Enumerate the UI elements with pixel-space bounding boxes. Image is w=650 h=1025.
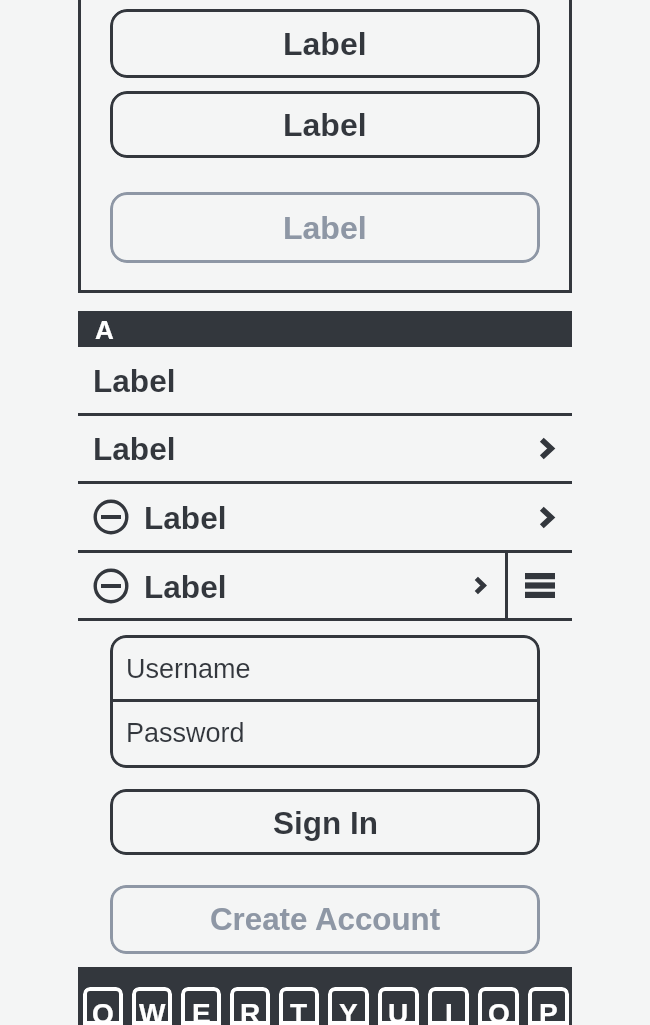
button[interactable]: Y [328, 987, 369, 1025]
button[interactable]: Label [78, 553, 505, 618]
staticText: A [95, 315, 114, 344]
staticText: Password [126, 718, 245, 748]
staticText: Q [92, 998, 114, 1025]
button[interactable]: P [528, 987, 569, 1025]
button[interactable]: E [181, 987, 221, 1025]
button[interactable]: R [230, 987, 270, 1025]
staticText: U [388, 998, 409, 1025]
staticText: Y [339, 998, 358, 1025]
staticText: W [139, 998, 166, 1025]
button[interactable]: Label [110, 91, 540, 158]
button[interactable]: Label [78, 416, 572, 481]
staticText: Label [283, 26, 367, 62]
button[interactable]: Sign In [110, 789, 540, 855]
button[interactable]: Label [78, 347, 572, 413]
staticText: Create Account [210, 902, 441, 937]
button[interactable]: Q [83, 987, 123, 1025]
staticText: O [488, 998, 510, 1025]
staticText: Sign In [273, 805, 378, 840]
button[interactable]: W [132, 987, 172, 1025]
staticText: Label [144, 569, 227, 604]
button[interactable]: A [78, 311, 572, 347]
staticText: I [445, 998, 453, 1025]
button[interactable]: O [478, 987, 519, 1025]
button[interactable]: Username [110, 635, 540, 699]
button[interactable]: T [279, 987, 319, 1025]
button[interactable]: Label [110, 9, 540, 78]
staticText: Label [283, 210, 367, 246]
staticText: Label [93, 431, 176, 466]
button[interactable]: Label [110, 192, 540, 263]
staticText: Username [126, 654, 251, 684]
staticText: T [290, 998, 308, 1025]
button[interactable]: Password [110, 702, 540, 768]
button[interactable]: U [378, 987, 419, 1025]
staticText: Label [283, 107, 367, 143]
button[interactable]: Create Account [110, 885, 540, 954]
button[interactable]: Menu [508, 553, 572, 618]
button[interactable]: Label [78, 484, 572, 550]
staticText: E [192, 998, 211, 1025]
staticText: Label [144, 500, 227, 535]
staticText: Label [93, 363, 176, 398]
staticText: P [539, 998, 558, 1025]
staticText: R [240, 998, 261, 1025]
button[interactable]: I [428, 987, 469, 1025]
